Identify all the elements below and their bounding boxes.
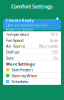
staticText: Off [52, 49, 58, 55]
staticText: 72°F [50, 32, 58, 37]
button[interactable]: Steering Wheel [3, 73, 61, 79]
staticText: Cabin pre-conditioning is on [5, 24, 47, 27]
button[interactable]: Sync [3, 55, 61, 61]
button[interactable]: Fan Speed [3, 37, 61, 43]
staticText: Defrost [6, 49, 19, 55]
staticText: Ready in 4 minutes [5, 28, 32, 31]
button[interactable]: Air Source [3, 43, 61, 49]
staticText: Seat Heaters [11, 67, 33, 72]
button[interactable]: Temperature [3, 31, 61, 37]
staticText: On [53, 55, 58, 60]
button[interactable]: Schedules [3, 79, 61, 85]
staticText: Steering Wheel [11, 73, 37, 78]
staticText: More Settings [6, 61, 35, 67]
button[interactable]: Defrost [3, 49, 61, 55]
staticText: Comfort Settings [11, 3, 53, 10]
staticText: Schedules [11, 79, 28, 84]
staticText: Auto [50, 37, 58, 43]
button[interactable]: Seat Heaters [3, 67, 61, 73]
staticText: Fan Speed [6, 37, 23, 43]
staticText: Temperature [6, 32, 29, 37]
staticText: Recirculate [39, 43, 58, 49]
staticText: Air Source [6, 43, 25, 49]
staticText: Climate Ready [5, 17, 33, 23]
staticText: Sync [6, 55, 14, 60]
